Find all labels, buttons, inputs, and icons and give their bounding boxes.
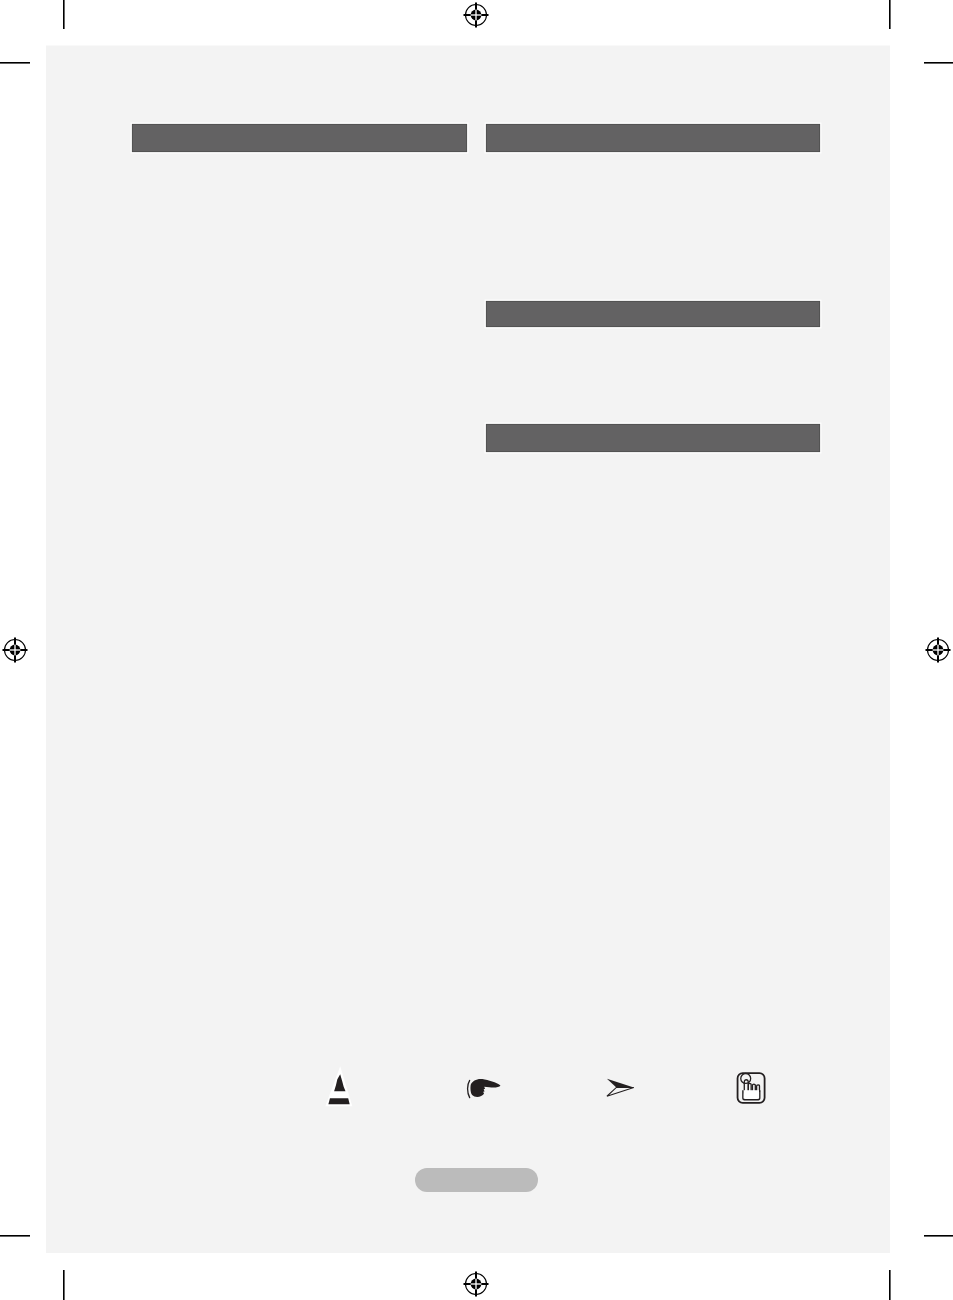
button[interactable]: Caution xyxy=(321,1062,359,1112)
button[interactable]: Pointing hand xyxy=(466,1074,501,1101)
button[interactable]: Tap to interact xyxy=(735,1071,767,1105)
button[interactable]: Arrow xyxy=(605,1076,637,1098)
button[interactable] xyxy=(415,1168,538,1192)
